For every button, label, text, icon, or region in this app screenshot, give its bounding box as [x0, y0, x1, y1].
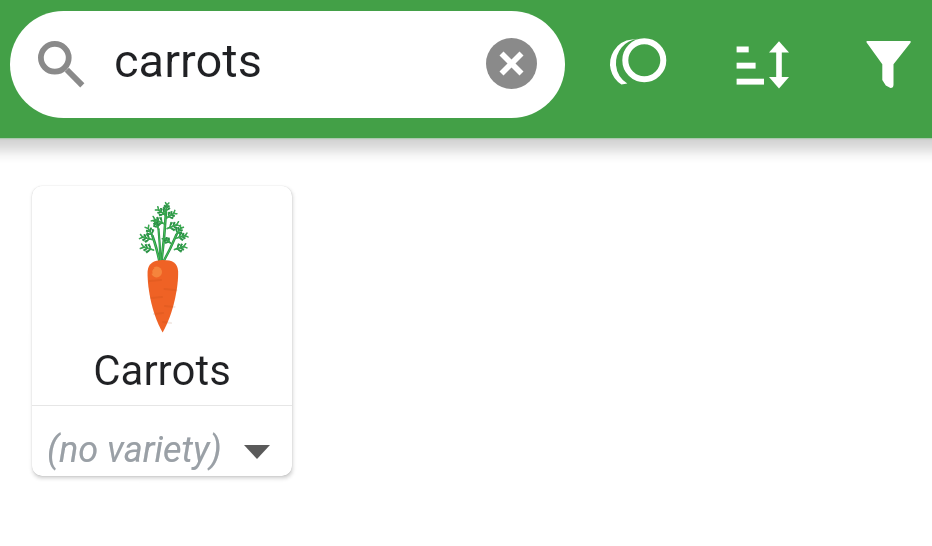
staticText: carrots [114, 33, 262, 88]
button[interactable]: (no variety) [32, 406, 292, 476]
staticText: Carrots [32, 346, 292, 395]
staticText: (no variety) [47, 429, 222, 471]
button[interactable]: carrots [10, 11, 565, 118]
button[interactable]: Sort [721, 22, 805, 106]
button[interactable]: Clear search [486, 38, 537, 89]
button[interactable]: Carrots [32, 186, 292, 476]
button[interactable]: Seeds [596, 22, 680, 106]
button[interactable]: Filter [846, 22, 930, 106]
